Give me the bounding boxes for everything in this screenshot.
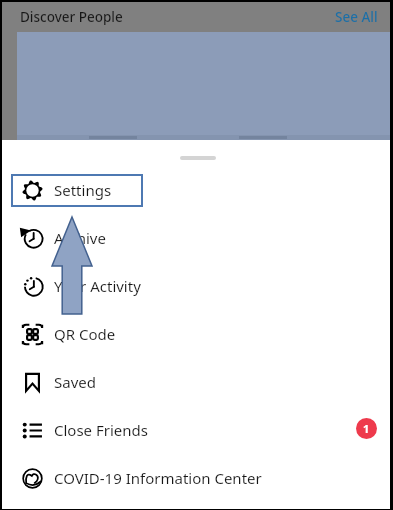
button[interactable]: QR Code (2, 310, 390, 358)
button[interactable]: Settings (2, 166, 390, 214)
staticText: Discover People (20, 8, 123, 26)
button[interactable]: COVID-19 Information Center (2, 454, 390, 502)
button[interactable]: Saved (2, 358, 390, 406)
staticText: COVID-19 Information Center (54, 468, 262, 488)
staticText: See All (335, 8, 378, 26)
staticText: Settings (54, 180, 112, 200)
staticText: Your Activity (54, 276, 141, 296)
staticText: 1 (363, 421, 370, 436)
staticText: Saved (54, 372, 96, 392)
button[interactable]: Archive (2, 214, 390, 262)
button[interactable]: Close Friends (2, 406, 390, 454)
staticText: Archive (54, 228, 106, 248)
button[interactable]: Your Activity (2, 262, 390, 310)
staticText: Close Friends (54, 420, 148, 440)
staticText: QR Code (54, 324, 116, 344)
